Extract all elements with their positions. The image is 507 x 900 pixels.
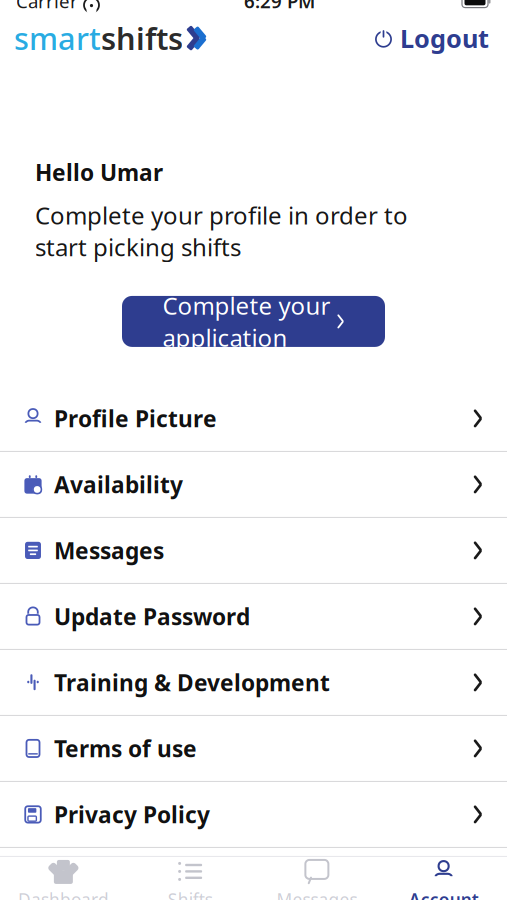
button[interactable]: Profile Picture [0,386,507,452]
staticText: Messages [54,535,164,565]
staticText: Account [409,888,479,900]
staticText: shifts [101,18,183,58]
button[interactable]: Availability [0,452,507,518]
button[interactable]: Terms of use [0,716,507,782]
button[interactable]: Training & Development [0,650,507,716]
staticText: Update Password [54,601,250,631]
staticText: Hello Umar [35,157,163,187]
button[interactable]: Update Password [0,584,507,650]
staticText: Terms of use [54,733,197,763]
staticText: Complete your profile in order to start … [35,199,408,263]
button[interactable]: Privacy Policy [0,782,507,848]
staticText: Dashboard [18,888,109,900]
staticText: Messages [276,888,357,900]
button[interactable]: Messages [0,518,507,584]
staticText: Complete your application [162,290,330,353]
staticText: Availability [54,469,183,499]
staticText: Shifts [168,888,213,900]
staticText: Privacy Policy [54,799,210,829]
staticText: Training & Development [54,667,330,697]
button[interactable]: Dashboard [0,857,127,900]
button[interactable]: Messages [253,857,380,900]
button[interactable]: Shifts [127,857,254,900]
staticText: Logout [400,21,489,55]
staticText: Carrier [16,0,78,13]
button[interactable]: Logout [366,15,497,61]
button[interactable]: Complete your application [122,296,385,347]
staticText: Profile Picture [54,403,217,433]
staticText: smart [14,18,101,58]
staticText: 6:29 PM [244,0,315,13]
button[interactable]: Account [380,857,507,900]
